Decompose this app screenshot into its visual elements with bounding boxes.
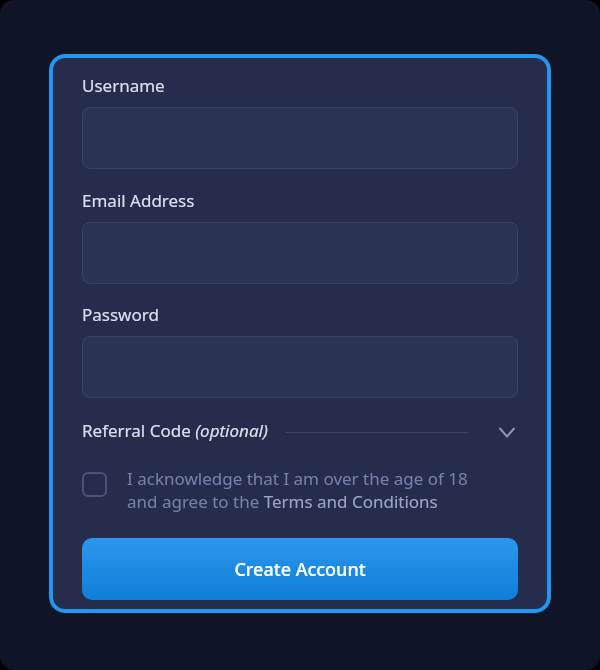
staticText: Email Address bbox=[82, 189, 195, 212]
button[interactable]: Create Account bbox=[82, 538, 518, 600]
staticText: I acknowledge that I am over the age of … bbox=[127, 467, 468, 490]
button[interactable]: I acknowledge that I am over the age of … bbox=[82, 467, 518, 513]
staticText: Username bbox=[82, 74, 165, 97]
button[interactable]: Referral Code (optional) bbox=[82, 419, 518, 442]
staticText: and agree to the Terms and Conditions bbox=[127, 490, 438, 513]
staticText: Referral Code (optional) bbox=[82, 419, 268, 442]
staticText: Create Account bbox=[234, 557, 366, 582]
staticText: Password bbox=[82, 303, 159, 326]
